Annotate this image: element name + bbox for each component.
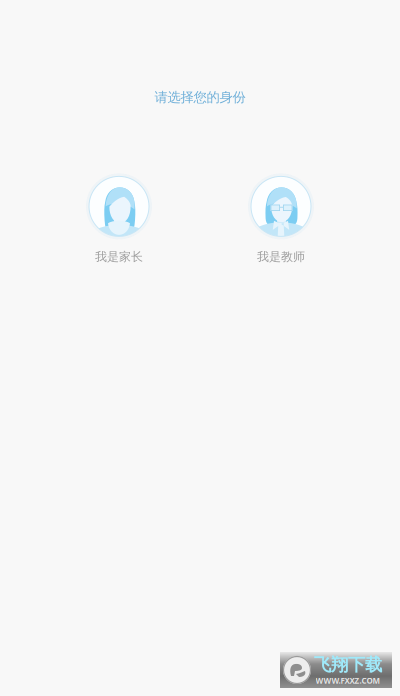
staticText: 飞翔下载 <box>314 654 382 675</box>
button[interactable]: 我是教师 <box>248 173 314 264</box>
staticText: 我是家长 <box>95 249 143 264</box>
button[interactable]: 我是家长 <box>86 173 152 264</box>
staticText: 我是教师 <box>257 249 305 264</box>
staticText: 请选择您的身份 <box>154 89 245 105</box>
staticText: WWW.FXXZ.COM <box>315 675 380 686</box>
